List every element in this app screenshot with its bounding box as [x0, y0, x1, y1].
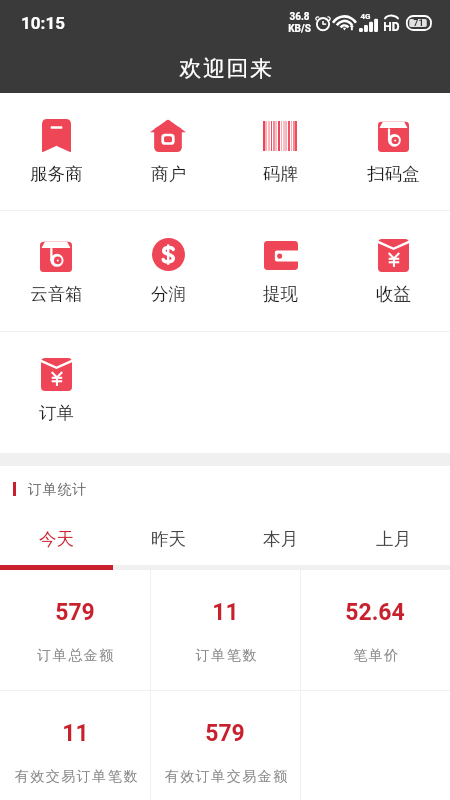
staticText: 订单统计 [28, 481, 87, 499]
button[interactable]: 579 [150, 691, 300, 800]
button[interactable]: 上月 [337, 509, 450, 569]
staticText: 订单总金额 [37, 647, 115, 665]
staticText: 订单 [39, 402, 74, 424]
staticText: 上月 [376, 528, 411, 550]
staticText: 码牌 [263, 163, 298, 185]
staticText: 商户 [151, 163, 186, 185]
button[interactable]: 提现 [224, 211, 337, 332]
staticText: 71 [413, 18, 424, 29]
button[interactable]: 11 [0, 691, 150, 800]
button[interactable]: 分润 [112, 211, 224, 332]
staticText: 今天 [39, 528, 74, 550]
button[interactable]: 本月 [224, 509, 337, 569]
staticText: 本月 [263, 528, 298, 550]
staticText: 昨天 [151, 528, 186, 550]
staticText: 579 [205, 720, 245, 747]
staticText: 11 [212, 599, 239, 626]
button[interactable]: 服务商 [0, 93, 112, 211]
staticText: KB/S [288, 23, 311, 35]
button[interactable]: 云音箱 [0, 211, 112, 332]
button[interactable]: 11 [150, 570, 300, 691]
button[interactable]: 今天 [0, 509, 112, 569]
button[interactable]: 扫码盒 [337, 93, 450, 211]
staticText: 服务商 [30, 163, 83, 185]
staticText: 52.64 [345, 599, 405, 626]
staticText: 36.8 [289, 11, 310, 23]
staticText: 579 [55, 599, 95, 626]
button[interactable]: 收益 [337, 211, 450, 332]
button[interactable]: 昨天 [112, 509, 224, 569]
button[interactable]: 商户 [112, 93, 224, 211]
button[interactable]: 订单 [0, 332, 112, 453]
staticText: 有效订单交易金额 [164, 768, 288, 786]
staticText: 扫码盒 [367, 163, 420, 185]
staticText: 4G [360, 12, 371, 21]
button[interactable]: 52.64 [300, 570, 450, 691]
staticText: 10:15 [21, 13, 65, 33]
staticText: 有效交易订单笔数 [14, 768, 138, 786]
staticText: HD [383, 20, 400, 34]
staticText: 收益 [376, 283, 411, 305]
staticText: 订单笔数 [195, 647, 257, 665]
button[interactable]: 码牌 [224, 93, 337, 211]
staticText: 提现 [263, 283, 298, 305]
button[interactable]: 579 [0, 570, 150, 691]
staticText: 11 [62, 720, 89, 747]
staticText: 笔单价 [353, 647, 400, 665]
staticText: 欢迎回来 [179, 55, 274, 83]
staticText: 云音箱 [30, 283, 83, 305]
staticText: 分润 [151, 283, 186, 305]
